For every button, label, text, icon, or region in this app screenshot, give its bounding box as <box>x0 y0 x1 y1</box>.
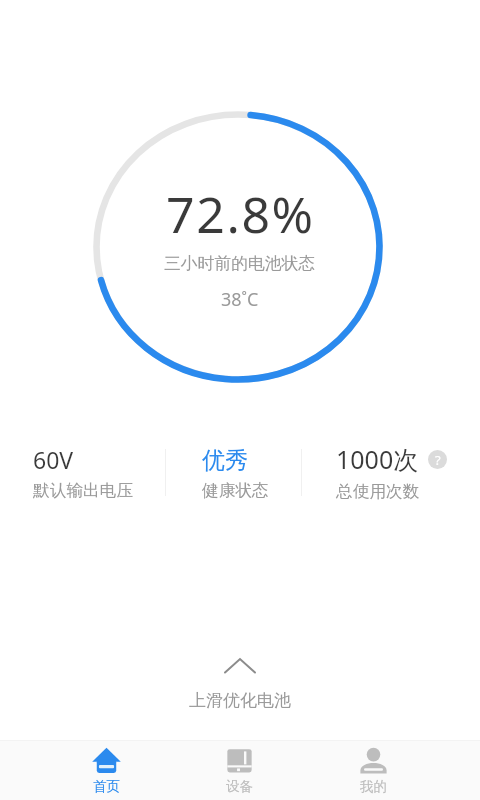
staticText: ? <box>435 451 441 469</box>
button[interactable]: 我的 <box>333 746 413 795</box>
button[interactable]: 设备 <box>199 746 279 795</box>
staticText: 健康状态 <box>202 480 269 501</box>
button[interactable]: 60V <box>33 444 134 501</box>
staticText: 设备 <box>226 778 253 795</box>
button[interactable]: 1000次 <box>336 442 447 502</box>
button[interactable]: 上滑优化电池 <box>150 650 330 711</box>
staticText: 72.8% <box>166 180 315 248</box>
staticText: 总使用次数 <box>336 481 420 502</box>
staticText: 三小时前的电池状态 <box>164 253 316 274</box>
staticText: 1000次 <box>336 442 419 476</box>
button[interactable]: 首页 <box>66 746 146 795</box>
staticText: 首页 <box>93 778 120 795</box>
staticText: 默认输出电压 <box>33 480 134 501</box>
staticText: 我的 <box>360 778 387 795</box>
staticText: 优秀 <box>202 446 248 475</box>
staticText: 上滑优化电池 <box>189 690 291 711</box>
staticText: 60V <box>33 444 74 475</box>
button[interactable]: 优秀 <box>202 446 269 501</box>
staticText: 38˚C <box>221 287 259 312</box>
